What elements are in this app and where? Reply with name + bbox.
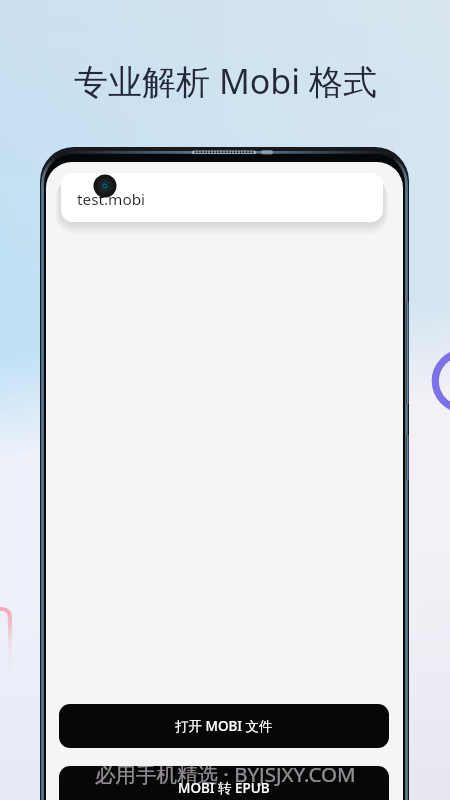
button[interactable]: MOBI 转 EPUB	[59, 766, 389, 800]
staticText: 专业解析 Mobi 格式	[74, 58, 377, 104]
staticText: 必用手机精选 · BYJSJXY.COM	[95, 760, 356, 788]
button[interactable]: test.mobi	[61, 173, 383, 222]
staticText: MOBI 转 EPUB	[178, 779, 270, 797]
button[interactable]: 打开 MOBI 文件	[59, 704, 389, 748]
staticText: test.mobi	[77, 189, 146, 210]
staticText: 打开 MOBI 文件	[175, 717, 273, 735]
